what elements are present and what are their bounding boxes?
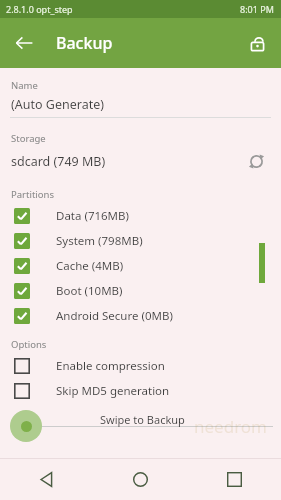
button[interactable]: System (798MB) (0, 228, 281, 253)
staticText: System (798MB) (56, 233, 143, 249)
staticText: 8:01 PM (240, 3, 274, 15)
staticText: Backup (56, 32, 113, 54)
button[interactable]: Swipe to Backup (0, 403, 281, 449)
staticText: (Auto Generate) (11, 96, 104, 113)
staticText: Data (716MB) (56, 208, 129, 224)
staticText: Boot (10MB) (56, 283, 123, 299)
staticText: Partitions (11, 188, 54, 201)
staticText: Name (11, 79, 38, 92)
button[interactable]: Boot (10MB) (0, 278, 281, 303)
button[interactable]: Skip MD5 generation (0, 378, 281, 403)
staticText: Storage (11, 132, 46, 145)
staticText: sdcard (749 MB) (11, 153, 243, 170)
staticText: Skip MD5 generation (56, 383, 170, 399)
button[interactable]: Cache (4MB) (0, 253, 281, 278)
button[interactable]: Back (6, 25, 42, 61)
staticText: Cache (4MB) (56, 258, 124, 274)
button[interactable]: Recent apps (187, 458, 281, 500)
staticText: Enable compression (56, 358, 165, 374)
staticText: Swipe to Backup (100, 412, 185, 427)
staticText: needrom (194, 415, 267, 438)
button[interactable]: Enable compression (0, 353, 281, 378)
staticText: Options (11, 338, 47, 351)
button[interactable]: Back (0, 458, 93, 500)
button[interactable]: Home (93, 458, 187, 500)
staticText: 2.8.1.0 opt_step (6, 3, 73, 15)
staticText: Android Secure (0MB) (56, 308, 173, 324)
button[interactable]: Android Secure (0MB) (0, 303, 281, 328)
button[interactable]: Refresh storage (243, 148, 269, 174)
button[interactable]: Data (716MB) (0, 203, 281, 228)
button[interactable]: Unlock (240, 26, 274, 60)
